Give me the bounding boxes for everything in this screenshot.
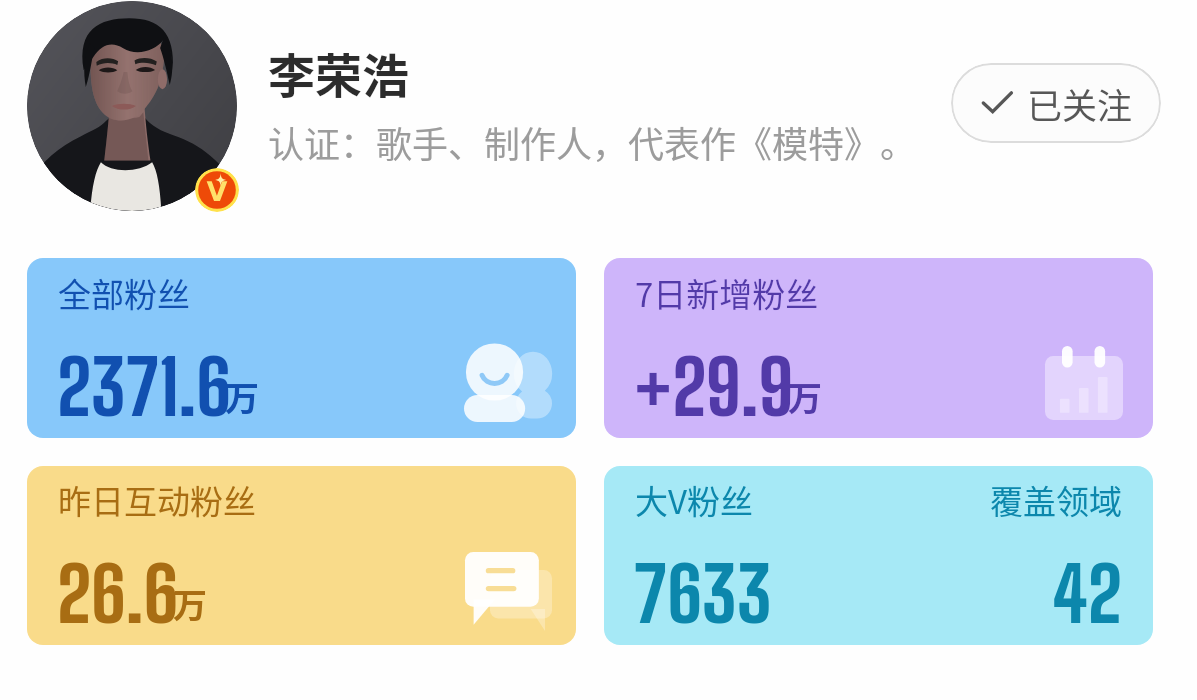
staticText: +29.9	[634, 343, 794, 432]
button[interactable]: 全部粉丝	[27, 258, 576, 438]
staticText: 已关注	[1027, 78, 1133, 129]
staticText: 认证：歌手、制作人，代表作《模特》。	[268, 116, 917, 168]
staticText: 26.6	[57, 550, 179, 639]
staticText: 昨日互动粉丝	[58, 476, 256, 524]
staticText: 万	[788, 372, 822, 421]
staticText: 2371.6	[57, 343, 231, 432]
staticText: 覆盖领域	[990, 476, 1122, 524]
staticText: 万	[225, 372, 259, 421]
button[interactable]: 大V粉丝	[604, 466, 1153, 645]
staticText: 7633	[634, 550, 773, 639]
button[interactable]: 李荣浩	[268, 38, 409, 106]
staticText: 7日新增粉丝	[635, 269, 819, 317]
button[interactable]: 昨日互动粉丝	[27, 466, 576, 645]
staticText: 大V粉丝	[635, 476, 753, 524]
staticText: 万	[173, 579, 207, 628]
staticText: 全部粉丝	[58, 269, 190, 317]
button[interactable]: 已关注	[951, 63, 1161, 143]
button[interactable]: 7日新增粉丝	[604, 258, 1153, 438]
staticText: 42	[1052, 550, 1122, 639]
button[interactable]: Profile photo of 李荣浩	[27, 1, 237, 211]
staticText: 李荣浩	[268, 38, 409, 106]
button[interactable]: Verified account badge	[195, 168, 239, 212]
